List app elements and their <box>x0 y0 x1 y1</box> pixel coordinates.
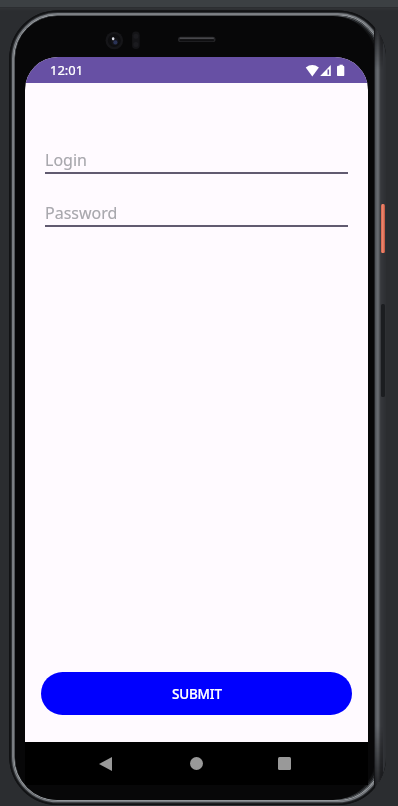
staticText: SUBMIT <box>172 685 222 703</box>
button[interactable]: Home <box>180 742 213 785</box>
staticText: Login <box>45 149 87 171</box>
button[interactable]: Password <box>45 202 348 227</box>
staticText: Password <box>45 202 118 224</box>
button[interactable]: Login <box>45 149 348 174</box>
button[interactable]: Back <box>89 742 122 785</box>
staticText: 12:01 <box>50 61 84 79</box>
button[interactable]: SUBMIT <box>41 672 352 715</box>
button[interactable]: Recent apps <box>268 742 301 785</box>
